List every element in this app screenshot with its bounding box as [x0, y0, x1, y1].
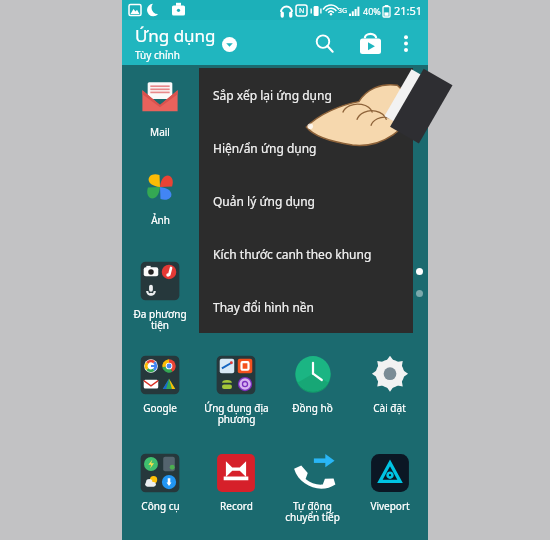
staticText: Đồng hồ [292, 401, 333, 415]
staticText: Quản lý ứng dụng [213, 193, 315, 209]
staticText: 3G [338, 6, 348, 16]
button[interactable]: Ứng dụng [135, 24, 237, 62]
staticText: Ứng dụng [135, 24, 216, 47]
staticText: 40% [363, 5, 381, 17]
button[interactable]: Mail [122, 73, 198, 139]
staticText: Ứng dụng địa phương [204, 401, 269, 426]
button[interactable]: Thay đổi hình nền [199, 280, 413, 333]
button[interactable]: Đa phương tiện [122, 255, 198, 332]
button[interactable]: Search [307, 26, 341, 60]
staticText: Kích thước canh theo khung [213, 246, 372, 262]
button[interactable]: Record [198, 447, 274, 513]
button[interactable]: Quản lý ứng dụng [199, 174, 413, 227]
staticText: Tùy chỉnh [135, 48, 180, 62]
staticText: Thay đổi hình nền [213, 299, 315, 315]
button[interactable]: Hiện/ẩn ứng dụng [199, 121, 413, 174]
staticText: Cài đặt [373, 401, 406, 415]
button[interactable]: Google [122, 349, 198, 415]
staticText: Ảnh [151, 213, 170, 227]
staticText: Record [220, 499, 253, 513]
button[interactable]: Cài đặt [351, 349, 428, 415]
button[interactable]: Play Store [353, 26, 387, 60]
staticText: Đa phương tiện [133, 307, 187, 332]
button[interactable]: Ứng dụng địa phương [198, 349, 274, 426]
button[interactable]: Kích thước canh theo khung [199, 227, 413, 280]
button[interactable]: Viveport [351, 447, 428, 513]
staticText: Google [143, 401, 177, 415]
staticText: Sắp xếp lại ứng dụng [213, 87, 332, 103]
button[interactable]: Sắp xếp lại ứng dụng [199, 68, 413, 121]
button[interactable]: Đồng hồ [274, 349, 351, 415]
button[interactable]: Ảnh [122, 161, 198, 227]
staticText: Viveport [370, 499, 410, 513]
button[interactable]: More options [391, 28, 421, 58]
staticText: 21:51 [394, 3, 423, 18]
staticText: Hiện/ẩn ứng dụng [213, 140, 317, 156]
staticText: N [299, 6, 305, 16]
staticText: Mail [150, 125, 170, 139]
staticText: Tự động chuyển tiếp [285, 499, 340, 524]
button[interactable]: Công cụ [122, 447, 198, 513]
staticText: Công cụ [141, 499, 180, 513]
button[interactable]: Tự động chuyển tiếp [274, 447, 351, 524]
